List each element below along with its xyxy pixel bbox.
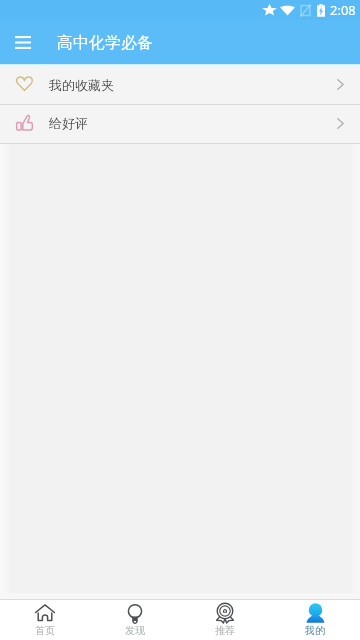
staticText: 给好评 <box>49 115 88 131</box>
button[interactable]: 首页 <box>0 600 90 640</box>
button[interactable]: 给好评 <box>0 105 360 143</box>
button[interactable]: 我的 <box>270 600 360 640</box>
button[interactable]: 我的收藏夹 <box>0 67 360 104</box>
staticText: 发现 <box>125 624 145 637</box>
button[interactable]: Open navigation menu <box>9 28 37 56</box>
staticText: 高中化学必备 <box>57 33 153 53</box>
staticText: 我的 <box>305 624 325 637</box>
staticText: 我的收藏夹 <box>49 77 114 93</box>
staticText: 推荐 <box>215 624 235 637</box>
button[interactable]: 发现 <box>90 600 180 640</box>
staticText: 首页 <box>35 624 55 637</box>
button[interactable]: 推荐 <box>180 600 270 640</box>
staticText: 2:08 <box>330 1 356 19</box>
